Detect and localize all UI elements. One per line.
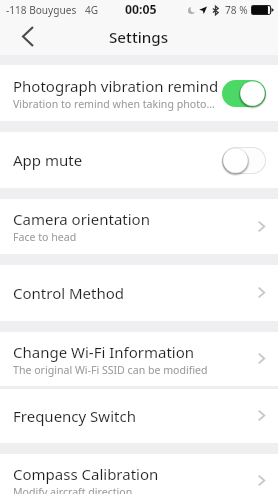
staticText: 4G xyxy=(85,3,99,17)
staticText: Photograph vibration remind xyxy=(13,76,219,96)
button[interactable]: Photograph vibration remind xyxy=(0,65,278,121)
button[interactable]: Back xyxy=(12,22,42,52)
staticText: The original Wi-Fi SSID can be modified xyxy=(13,363,208,377)
staticText: App mute xyxy=(13,150,83,170)
button[interactable]: Camera orientation xyxy=(0,199,278,254)
button[interactable]: App mute xyxy=(0,132,278,188)
button[interactable]: Frequency Switch xyxy=(0,389,278,443)
staticText: 78 % xyxy=(225,3,248,17)
button[interactable]: Compass Calibration xyxy=(0,454,278,494)
staticText: Camera orientation xyxy=(13,209,150,229)
staticText: Compass Calibration xyxy=(13,464,159,484)
staticText: Modify aircraft direction xyxy=(13,485,133,494)
staticText: Frequency Switch xyxy=(13,406,136,426)
staticText: -118 Bouygues xyxy=(6,3,77,17)
staticText: Settings xyxy=(109,27,169,48)
button[interactable] xyxy=(222,147,266,174)
staticText: Face to head xyxy=(13,230,77,244)
staticText: Control Method xyxy=(13,283,125,303)
staticText: 00:05 xyxy=(125,1,157,18)
staticText: Vibration to remind when taking photo... xyxy=(13,97,215,111)
button[interactable]: Control Method xyxy=(0,265,278,321)
button[interactable] xyxy=(222,80,266,107)
button[interactable]: Change Wi-Fi Information xyxy=(0,332,278,386)
staticText: Change Wi-Fi Information xyxy=(13,342,195,362)
